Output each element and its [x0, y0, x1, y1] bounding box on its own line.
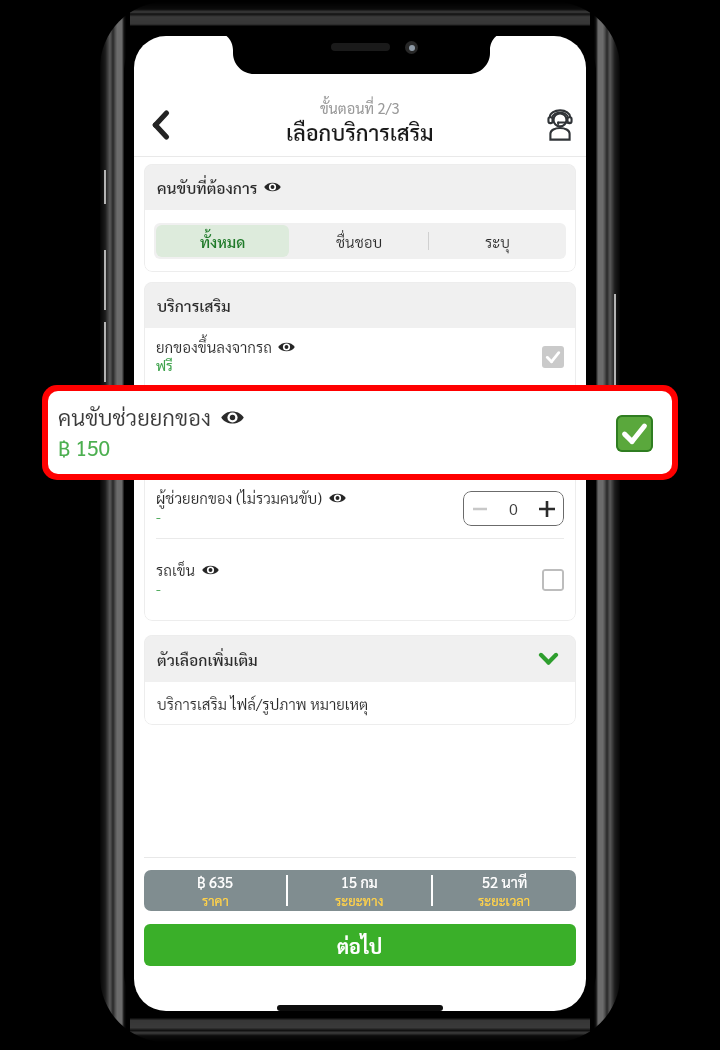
staticText: บริการเสริม ไฟล์/รูปภาพ หมายเหตุ: [157, 694, 369, 713]
staticText: -: [156, 579, 161, 597]
staticText: รถเข็น: [156, 560, 196, 579]
staticText: ฿ 150: [58, 434, 111, 461]
staticText: 15 กม: [341, 873, 378, 892]
button[interactable]: ระบุ: [429, 223, 566, 259]
button[interactable]: Selected: [616, 415, 653, 452]
button[interactable]: ตัวเลือกเพิ่มเติม: [144, 635, 576, 682]
staticText: ระยะเวลา: [478, 892, 531, 909]
staticText: ทั้งหมด: [200, 232, 246, 251]
staticText: ระบุ: [485, 232, 510, 251]
staticText: ระยะทาง: [335, 892, 384, 909]
staticText: คนขับที่ต้องการ: [157, 177, 258, 197]
staticText: คนขับช่วยยกของ: [58, 403, 211, 432]
staticText: เลือกบริการเสริม: [286, 118, 434, 146]
staticText: ผู้ช่วยยกของ (ไม่รวมคนขับ): [156, 488, 323, 507]
staticText: ต่อไป: [337, 933, 383, 958]
staticText: ฿ 635: [197, 873, 233, 892]
button[interactable]: Decrease: [463, 491, 496, 526]
staticText: -: [156, 507, 161, 525]
button[interactable]: ยกของขึ้นลงจากรถ: [144, 328, 576, 386]
button[interactable]: Support: [536, 100, 584, 148]
staticText: ตัวเลือกเพิ่มเติม: [157, 649, 539, 669]
button[interactable]: Increase: [530, 491, 564, 526]
button[interactable]: [542, 346, 564, 368]
button[interactable]: [542, 569, 564, 591]
button[interactable]: คนขับช่วยยกของ: [48, 391, 672, 474]
button[interactable]: รถเข็น: [144, 539, 576, 621]
staticText: ราคา: [202, 892, 229, 909]
staticText: ขั้นตอนที่ 2/3: [320, 99, 400, 118]
staticText: 0: [509, 498, 518, 519]
button[interactable]: ต่อไป: [144, 924, 576, 966]
button[interactable]: ชื่นชอบ: [291, 223, 428, 259]
button[interactable]: ทั้งหมด: [156, 225, 289, 257]
staticText: ชื่นชอบ: [336, 232, 383, 251]
staticText: ฟรี: [156, 356, 173, 374]
staticText: บริการเสริม: [157, 295, 231, 315]
button[interactable]: Back: [136, 101, 184, 149]
staticText: 52 นาที: [482, 873, 528, 892]
staticText: ยกของขึ้นลงจากรถ: [156, 337, 272, 356]
button[interactable]: ผู้ช่วยยกของ (ไม่รวมคนขับ): [144, 478, 576, 538]
